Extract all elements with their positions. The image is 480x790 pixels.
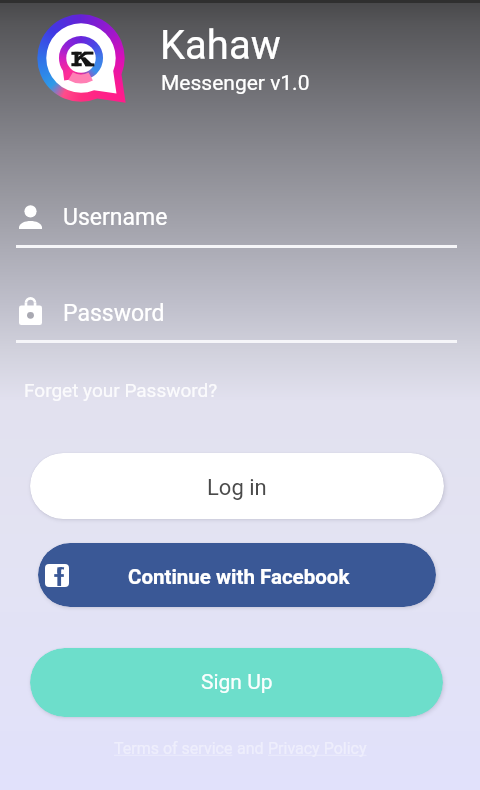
other: Password [19,297,42,325]
button[interactable]: Continue with Facebook [38,543,436,607]
button[interactable] [0,193,480,247]
button[interactable] [0,285,480,339]
staticText: Continue with Facebook [128,565,350,589]
button[interactable]: Terms of service [114,739,233,758]
staticText: Messenger v1.0 [161,71,310,96]
staticText: Sign Up [201,670,273,695]
staticText: Password [63,300,165,327]
staticText: Username [63,204,168,231]
staticText: Kahaw [160,22,281,69]
button[interactable]: Log in [30,453,444,519]
staticText: Forget your Password? [24,379,218,401]
button[interactable]: Privacy Policy [268,739,367,758]
staticText: Log in [207,475,267,501]
button[interactable]: Sign Up [30,648,443,717]
other: Kahaw logo [33,11,129,107]
other: Username [19,205,42,229]
button[interactable]: Forget your Password? [24,379,218,401]
staticText: and [233,739,268,758]
